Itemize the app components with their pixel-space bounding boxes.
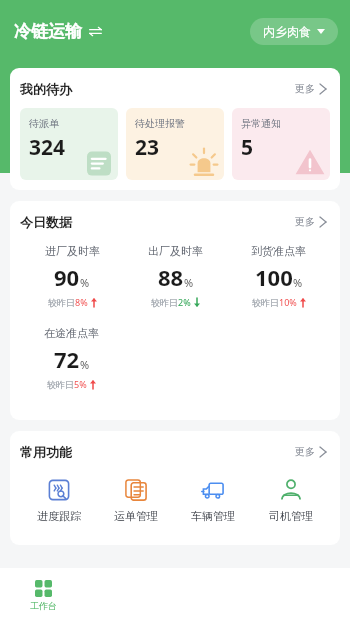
staticText: 待处理报警: [135, 117, 185, 130]
button[interactable]: 在途准点率: [20, 326, 123, 390]
staticText: 72: [54, 344, 80, 374]
button[interactable]: 进厂及时率: [20, 244, 124, 308]
button[interactable]: 切换: [89, 25, 102, 38]
staticText: 23: [135, 133, 160, 162]
staticText: 更多: [295, 82, 315, 95]
staticText: 8%: [75, 296, 88, 308]
button[interactable]: 到货准点率: [227, 244, 330, 308]
staticText: 90: [54, 262, 80, 292]
button[interactable]: 更多: [291, 441, 330, 462]
staticText: 工作台: [30, 600, 57, 611]
staticText: 内乡肉食: [263, 24, 311, 39]
staticText: 进厂及时率: [45, 244, 100, 258]
staticText: 运单管理: [114, 509, 158, 523]
button[interactable]: 异常通知: [232, 108, 330, 180]
staticText: 到货准点率: [251, 244, 306, 258]
staticText: 5: [241, 133, 254, 162]
staticText: 在途准点率: [44, 326, 99, 340]
staticText: 较昨日: [252, 297, 279, 308]
staticText: 更多: [295, 445, 315, 458]
staticText: 司机管理: [269, 509, 313, 523]
staticText: 异常通知: [241, 117, 281, 130]
button[interactable]: 更多: [291, 78, 330, 99]
button[interactable]: 车辆管理: [174, 476, 252, 525]
staticText: 324: [29, 133, 66, 162]
staticText: 100: [255, 262, 293, 292]
staticText: 待派单: [29, 117, 59, 130]
staticText: 5%: [74, 378, 87, 390]
staticText: 我的待办: [20, 81, 72, 97]
staticText: 车辆管理: [191, 509, 235, 523]
staticText: %: [80, 357, 90, 372]
staticText: 更多: [295, 215, 315, 228]
button[interactable]: 更多: [291, 211, 330, 232]
button[interactable]: 工作台: [0, 576, 87, 615]
staticText: %: [80, 275, 90, 290]
button[interactable]: 内乡肉食: [250, 18, 338, 45]
button[interactable]: 司机管理: [252, 476, 330, 525]
button[interactable]: 待处理报警: [126, 108, 224, 180]
staticText: 今日数据: [20, 214, 72, 230]
staticText: 较昨日: [47, 379, 74, 390]
button[interactable]: 待派单: [20, 108, 118, 180]
staticText: %: [184, 275, 194, 290]
staticText: 较昨日: [151, 297, 178, 308]
staticText: 2%: [178, 296, 191, 308]
staticText: 10%: [279, 296, 297, 308]
staticText: 出厂及时率: [148, 244, 203, 258]
button[interactable]: 进度跟踪: [20, 476, 97, 525]
staticText: 常用功能: [20, 444, 72, 460]
button[interactable]: 出厂及时率: [124, 244, 227, 308]
staticText: %: [293, 275, 303, 290]
staticText: 88: [158, 262, 184, 292]
staticText: 冷链运输: [14, 21, 82, 42]
staticText: 进度跟踪: [37, 509, 81, 523]
button[interactable]: 运单管理: [97, 476, 174, 525]
staticText: 较昨日: [48, 297, 75, 308]
